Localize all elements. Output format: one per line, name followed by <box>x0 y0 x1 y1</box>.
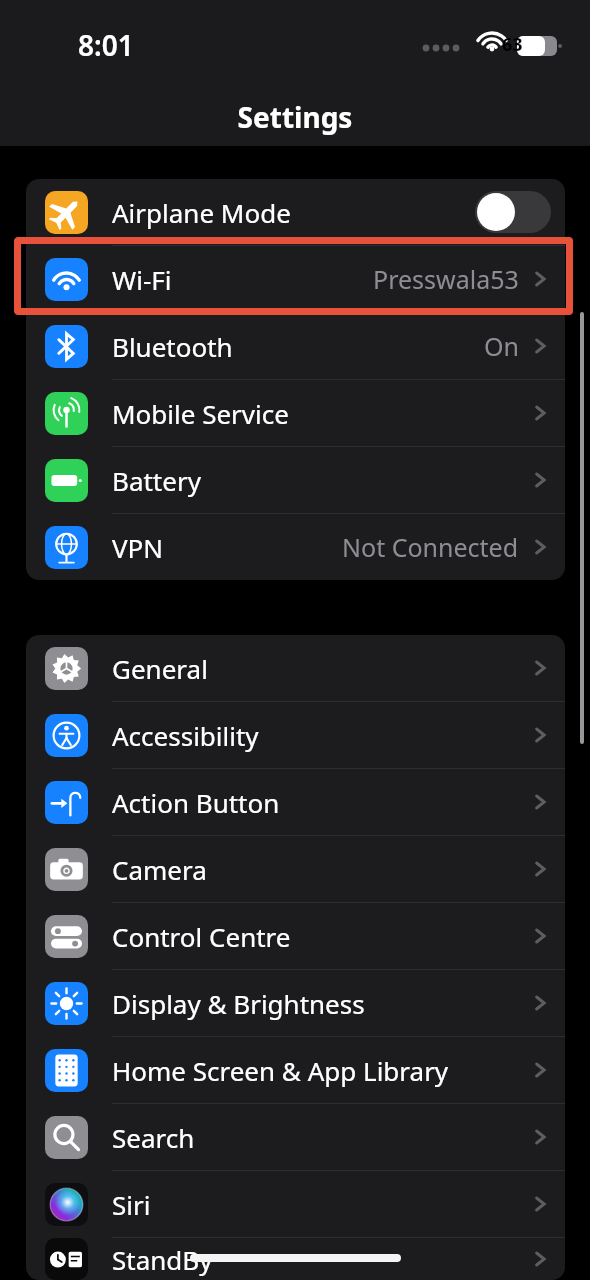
button[interactable]: Battery <box>26 447 565 514</box>
staticText: 63 <box>502 32 523 57</box>
button[interactable]: Action Button <box>26 769 565 836</box>
staticText: Wi-Fi <box>112 262 172 297</box>
staticText: Camera <box>112 852 207 887</box>
staticText: Control Centre <box>112 919 291 954</box>
button[interactable]: General <box>26 635 565 702</box>
button[interactable]: Siri <box>26 1171 565 1238</box>
staticText: Action Button <box>112 785 280 820</box>
button[interactable]: Airplane Mode <box>26 179 565 246</box>
button[interactable]: Control Centre <box>26 903 565 970</box>
button[interactable]: Bluetooth <box>26 313 565 380</box>
staticText: VPN <box>112 530 164 565</box>
staticText: Presswala53 <box>373 262 519 296</box>
staticText: General <box>112 651 208 686</box>
button[interactable]: Search <box>26 1104 565 1171</box>
button[interactable]: Display & Brightness <box>26 970 565 1037</box>
button[interactable]: Wi-Fi <box>26 246 565 313</box>
staticText: Airplane Mode <box>112 195 291 230</box>
staticText: Search <box>112 1120 195 1155</box>
staticText: Settings <box>0 98 590 136</box>
staticText: Accessibility <box>112 718 259 753</box>
button[interactable]: Home Screen & App Library <box>26 1037 565 1104</box>
button[interactable]: Airplane Mode toggle <box>475 191 551 233</box>
button[interactable]: StandBy <box>26 1238 565 1280</box>
staticText: Home Screen & App Library <box>112 1053 449 1088</box>
staticText: Bluetooth <box>112 329 233 364</box>
staticText: StandBy <box>112 1242 213 1277</box>
staticText: Display & Brightness <box>112 986 365 1021</box>
button[interactable]: VPN <box>26 514 565 580</box>
staticText: Siri <box>112 1187 151 1222</box>
staticText: 8:01 <box>78 26 134 64</box>
button[interactable]: Mobile Service <box>26 380 565 447</box>
staticText: On <box>484 329 519 363</box>
staticText: Not Connected <box>342 530 519 564</box>
button[interactable]: Accessibility <box>26 702 565 769</box>
staticText: Battery <box>112 463 201 498</box>
staticText: Mobile Service <box>112 396 289 431</box>
button[interactable]: Camera <box>26 836 565 903</box>
